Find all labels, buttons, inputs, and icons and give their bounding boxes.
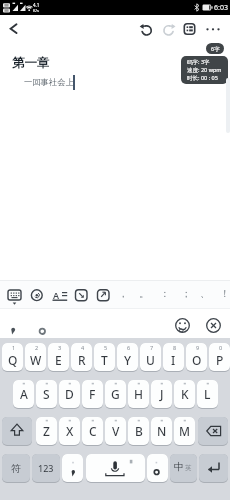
button[interactable] bbox=[173, 316, 192, 335]
button[interactable]: B bbox=[128, 417, 149, 445]
button[interactable] bbox=[29, 286, 45, 306]
staticText: ！ bbox=[220, 287, 230, 300]
staticText: W bbox=[30, 352, 42, 368]
staticText: ； bbox=[181, 287, 191, 300]
staticText: 6字 bbox=[211, 45, 220, 53]
button[interactable]: S bbox=[36, 380, 57, 408]
button[interactable] bbox=[6, 286, 23, 306]
staticText: 英 bbox=[185, 464, 192, 472]
button[interactable]: E bbox=[48, 343, 69, 371]
staticText: Z bbox=[43, 423, 50, 439]
staticText: H bbox=[134, 386, 143, 402]
staticText: S bbox=[43, 386, 50, 402]
button[interactable]: N bbox=[151, 417, 172, 445]
staticText: K/s bbox=[33, 8, 39, 13]
button[interactable] bbox=[4, 310, 24, 336]
staticText: Y bbox=[124, 352, 132, 368]
staticText: 中 bbox=[174, 460, 184, 473]
button[interactable]: R bbox=[71, 343, 92, 371]
staticText: R bbox=[78, 352, 86, 368]
staticText: V bbox=[112, 423, 120, 439]
button[interactable]: ： bbox=[156, 286, 170, 306]
button[interactable]: 、 bbox=[196, 286, 210, 306]
staticText: O bbox=[192, 352, 202, 368]
button[interactable]: T bbox=[94, 343, 115, 371]
button[interactable]: U bbox=[140, 343, 161, 371]
button[interactable] bbox=[51, 286, 68, 306]
button[interactable] bbox=[86, 454, 145, 482]
button[interactable]: G bbox=[105, 380, 126, 408]
staticText: 5 bbox=[104, 344, 108, 351]
button[interactable]: A bbox=[13, 380, 34, 408]
staticText: D bbox=[65, 386, 74, 402]
staticText: T bbox=[101, 352, 108, 368]
button[interactable]: X bbox=[59, 417, 80, 445]
staticText: K bbox=[181, 386, 189, 402]
button[interactable] bbox=[4, 20, 24, 38]
staticText: 6 bbox=[127, 344, 131, 351]
button[interactable] bbox=[31, 310, 53, 336]
button[interactable] bbox=[198, 417, 228, 445]
button[interactable]: 符 bbox=[2, 454, 30, 482]
button[interactable]: M bbox=[174, 417, 195, 445]
button[interactable]: V bbox=[105, 417, 126, 445]
button[interactable]: F bbox=[82, 380, 103, 408]
staticText: A bbox=[20, 386, 28, 402]
button[interactable] bbox=[147, 454, 168, 482]
button[interactable] bbox=[74, 286, 89, 306]
button[interactable] bbox=[199, 454, 228, 482]
button[interactable] bbox=[96, 286, 111, 306]
staticText: M bbox=[179, 423, 191, 439]
staticText: 时长: 00 : 05 bbox=[187, 74, 218, 82]
button[interactable]: O bbox=[186, 343, 207, 371]
button[interactable]: K bbox=[174, 380, 195, 408]
button[interactable]: Z bbox=[36, 417, 57, 445]
staticText: 1 bbox=[12, 344, 16, 351]
button[interactable]: D bbox=[59, 380, 80, 408]
staticText: 一回事社会上 bbox=[24, 77, 74, 87]
button[interactable]: 。 bbox=[135, 286, 149, 306]
staticText: 7 bbox=[150, 344, 154, 351]
staticText: P bbox=[216, 352, 224, 368]
button[interactable]: H bbox=[128, 380, 149, 408]
staticText: 3 bbox=[58, 344, 62, 351]
staticText: 、 bbox=[200, 287, 210, 300]
button[interactable] bbox=[158, 20, 178, 38]
button[interactable] bbox=[2, 417, 32, 445]
button[interactable]: C bbox=[82, 417, 103, 445]
staticText: 6:03 bbox=[214, 3, 228, 13]
staticText: 2 bbox=[35, 344, 39, 351]
button[interactable]: W bbox=[25, 343, 46, 371]
staticText: E bbox=[55, 352, 62, 368]
staticText: 9 bbox=[196, 344, 200, 351]
button[interactable]: I bbox=[163, 343, 184, 371]
button[interactable]: L bbox=[197, 380, 218, 408]
button[interactable] bbox=[203, 20, 225, 38]
button[interactable]: Y bbox=[117, 343, 138, 371]
button[interactable] bbox=[170, 454, 197, 482]
button[interactable]: 123 bbox=[32, 454, 60, 482]
button[interactable]: Q bbox=[2, 343, 23, 371]
button[interactable] bbox=[204, 316, 223, 335]
button[interactable] bbox=[180, 20, 200, 38]
staticText: ： bbox=[160, 287, 170, 300]
button[interactable] bbox=[136, 20, 156, 38]
staticText: 速度: 20 wpm bbox=[187, 66, 222, 74]
staticText: 第一章 bbox=[12, 55, 50, 71]
staticText: Q bbox=[8, 352, 18, 368]
staticText: B bbox=[135, 423, 143, 439]
button[interactable]: J bbox=[151, 380, 172, 408]
button[interactable]: ， bbox=[114, 286, 128, 306]
staticText: J bbox=[160, 386, 164, 402]
button[interactable]: ； bbox=[177, 286, 191, 306]
staticText: U bbox=[146, 352, 155, 368]
button[interactable]: ！ bbox=[216, 286, 230, 306]
staticText: A bbox=[53, 289, 60, 301]
staticText: L bbox=[204, 386, 211, 402]
staticText: 123 bbox=[38, 462, 54, 474]
button[interactable] bbox=[62, 454, 83, 482]
staticText: I bbox=[171, 352, 176, 368]
button[interactable]: P bbox=[209, 343, 230, 371]
staticText: ， bbox=[118, 287, 128, 300]
staticText: 0 bbox=[219, 344, 223, 351]
